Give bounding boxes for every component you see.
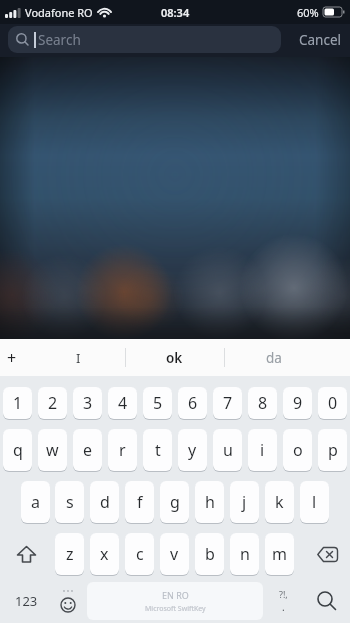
staticText: 08:34	[161, 5, 190, 20]
staticText: 1	[13, 392, 23, 414]
button[interactable]: 123	[0, 582, 52, 620]
button[interactable]: h	[195, 481, 224, 523]
staticText: 9	[293, 392, 303, 414]
button[interactable]: t	[143, 429, 172, 471]
button[interactable]: b	[195, 533, 224, 575]
button[interactable]: q	[3, 429, 32, 471]
button[interactable]: s	[55, 481, 84, 523]
button[interactable]: k	[265, 481, 294, 523]
staticText: 60%	[297, 5, 319, 20]
staticText: r	[119, 439, 126, 461]
button[interactable]: 2	[38, 387, 67, 419]
staticText: t	[155, 439, 161, 461]
staticText: 6	[188, 392, 198, 414]
staticText: z	[66, 543, 74, 565]
staticText: I	[76, 349, 81, 367]
button[interactable]: c	[125, 533, 154, 575]
staticText: .	[282, 600, 285, 614]
button[interactable]: 4	[108, 387, 137, 419]
button[interactable]: u	[213, 429, 242, 471]
staticText: ?!,	[279, 588, 288, 600]
button[interactable]: 9	[283, 387, 312, 419]
staticText: 7	[223, 392, 233, 414]
staticText: f	[137, 491, 143, 513]
staticText: 0	[328, 392, 338, 414]
button[interactable]: a	[21, 481, 50, 523]
staticText: +	[7, 347, 17, 369]
button[interactable]: l	[300, 481, 329, 523]
button[interactable]	[0, 533, 52, 575]
button[interactable]: p	[318, 429, 347, 471]
button[interactable]: 3	[73, 387, 102, 419]
staticText: 5	[153, 392, 163, 414]
button[interactable]: f	[125, 481, 154, 523]
staticText: q	[13, 439, 23, 461]
staticText: 3	[83, 392, 93, 414]
button[interactable]	[52, 582, 84, 620]
button[interactable]: Search	[8, 26, 281, 53]
button[interactable]: 7	[213, 387, 242, 419]
staticText: i	[260, 439, 265, 461]
staticText: e	[83, 439, 93, 461]
button[interactable]: x	[90, 533, 119, 575]
staticText: m	[272, 543, 287, 565]
button[interactable]: ok	[125, 339, 224, 376]
staticText: u	[223, 439, 233, 461]
button[interactable]: da	[224, 339, 323, 376]
button[interactable]	[297, 533, 350, 575]
button[interactable]: w	[38, 429, 67, 471]
staticText: Microsoft SwiftKey	[145, 604, 206, 614]
staticText: 123	[15, 592, 38, 610]
button[interactable]: d	[90, 481, 119, 523]
button[interactable]: I	[32, 339, 124, 376]
button[interactable]: j	[230, 481, 259, 523]
button[interactable]: Cancel	[299, 31, 342, 49]
staticText: 2	[48, 392, 58, 414]
staticText: Search	[38, 31, 81, 49]
staticText: 4	[118, 392, 128, 414]
staticText: x	[100, 543, 109, 565]
button[interactable]: m	[265, 533, 294, 575]
staticText: v	[170, 543, 179, 565]
button[interactable]: e	[73, 429, 102, 471]
staticText: da	[266, 349, 282, 367]
button[interactable]: 6	[178, 387, 207, 419]
staticText: j	[242, 491, 247, 513]
button[interactable]: v	[160, 533, 189, 575]
button[interactable]: i	[248, 429, 277, 471]
staticText: l	[312, 491, 317, 513]
button[interactable]: n	[230, 533, 259, 575]
button[interactable]: z	[55, 533, 84, 575]
staticText: y	[188, 439, 197, 461]
button[interactable]: 0	[318, 387, 347, 419]
staticText: k	[275, 491, 284, 513]
staticText: b	[205, 543, 215, 565]
staticText: w	[46, 439, 59, 461]
staticText: n	[240, 543, 250, 565]
button[interactable]: 1	[3, 387, 32, 419]
button[interactable]: g	[160, 481, 189, 523]
staticText: c	[136, 543, 144, 565]
staticText: a	[31, 491, 40, 513]
staticText: o	[293, 439, 303, 461]
button[interactable]: o	[283, 429, 312, 471]
button[interactable]: +	[3, 339, 21, 376]
staticText: g	[170, 491, 180, 513]
button[interactable]: EN RO	[87, 582, 263, 620]
button[interactable]: y	[178, 429, 207, 471]
staticText: p	[328, 439, 338, 461]
staticText: ok	[166, 349, 183, 367]
staticText: EN RO	[162, 589, 189, 601]
staticText: h	[205, 491, 215, 513]
staticText: 8	[258, 392, 268, 414]
button[interactable]: r	[108, 429, 137, 471]
button[interactable]: 8	[248, 387, 277, 419]
staticText: Cancel	[299, 31, 342, 49]
button[interactable]: ?!,	[263, 582, 303, 620]
staticText: s	[66, 491, 74, 513]
staticText: d	[100, 491, 110, 513]
button[interactable]: 5	[143, 387, 172, 419]
button[interactable]	[303, 582, 350, 620]
staticText: Vodafone RO	[25, 5, 93, 20]
